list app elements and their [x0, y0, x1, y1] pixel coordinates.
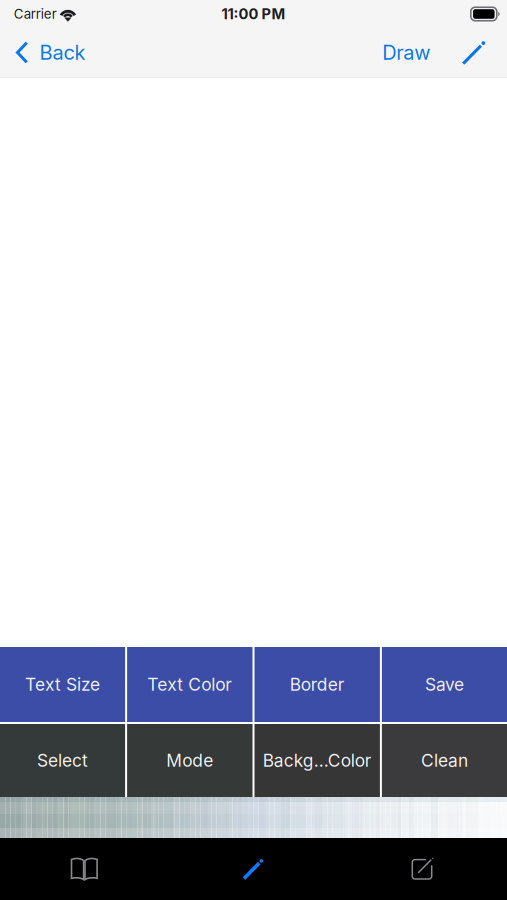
button[interactable]: Border — [254, 647, 380, 722]
staticText: Carrier — [14, 6, 57, 22]
staticText: Mode — [166, 750, 213, 771]
staticText: Draw — [382, 40, 430, 65]
button[interactable]: Draw tool — [455, 30, 493, 74]
staticText: Text Color — [147, 674, 232, 695]
button[interactable]: Text Color — [127, 647, 252, 722]
staticText: Save — [425, 674, 464, 695]
staticText: Border — [290, 674, 345, 695]
button[interactable]: Select — [0, 724, 125, 797]
button[interactable]: Clean — [382, 724, 507, 797]
staticText: Backg...Color — [263, 750, 372, 771]
button[interactable]: Mode — [127, 724, 252, 797]
button[interactable]: Library — [0, 838, 169, 900]
button[interactable]: Draw — [374, 30, 438, 74]
staticText: Clean — [421, 750, 468, 771]
button[interactable]: Draw — [169, 838, 338, 900]
button[interactable]: Save — [382, 647, 507, 722]
staticText: 11:00 PM — [221, 5, 285, 23]
staticText: Text Size — [25, 674, 100, 695]
button[interactable]: Back — [0, 30, 97, 74]
button[interactable]: Compose — [338, 838, 507, 900]
staticText: Back — [39, 40, 85, 65]
button[interactable]: Backg...Color — [254, 724, 380, 797]
button[interactable]: Text Size — [0, 647, 125, 722]
staticText: Select — [37, 750, 88, 771]
